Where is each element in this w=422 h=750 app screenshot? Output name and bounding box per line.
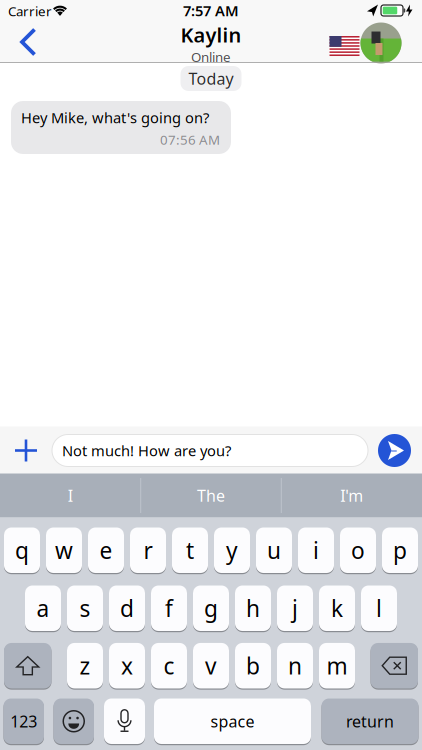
staticText: u: [267, 535, 281, 565]
button[interactable]: u: [256, 527, 292, 574]
staticText: h: [246, 593, 260, 623]
staticText: w: [55, 535, 73, 565]
staticText: m: [326, 651, 347, 681]
staticText: x: [121, 651, 133, 681]
staticText: p: [393, 535, 407, 565]
button[interactable]: I'm: [287, 485, 417, 506]
staticText: 7:57 AM: [183, 1, 239, 20]
button[interactable]: space: [154, 698, 311, 745]
button[interactable]: k: [319, 585, 355, 632]
staticText: t: [186, 535, 194, 565]
staticText: n: [288, 651, 302, 681]
staticText: g: [204, 593, 218, 623]
staticText: space: [210, 711, 254, 732]
staticText: d: [120, 593, 134, 623]
staticText: i: [313, 535, 319, 565]
button[interactable]: [4, 642, 51, 689]
button[interactable]: b: [235, 642, 271, 689]
button[interactable]: d: [109, 585, 145, 632]
staticText: 07:56 AM: [160, 131, 220, 148]
staticText: y: [226, 535, 238, 565]
staticText: c: [163, 651, 174, 681]
button[interactable]: [53, 698, 94, 745]
staticText: k: [331, 593, 343, 623]
button[interactable]: o: [340, 527, 376, 574]
staticText: Kaylin: [180, 21, 241, 48]
staticText: return: [346, 711, 394, 732]
staticText: z: [79, 651, 90, 681]
staticText: Online: [191, 48, 231, 66]
button[interactable]: I: [5, 485, 135, 506]
staticText: f: [165, 593, 173, 623]
staticText: 123: [10, 711, 37, 732]
button[interactable]: p: [382, 527, 418, 574]
staticText: q: [15, 535, 29, 565]
staticText: e: [99, 535, 112, 565]
button[interactable]: i: [298, 527, 334, 574]
button[interactable]: 123: [3, 698, 44, 745]
button[interactable]: w: [46, 527, 82, 574]
button[interactable]: s: [67, 585, 103, 632]
button[interactable]: l: [361, 585, 397, 632]
staticText: l: [376, 593, 382, 623]
staticText: j: [292, 593, 298, 623]
button[interactable]: t: [172, 527, 208, 574]
staticText: I: [68, 485, 73, 506]
staticText: Today: [188, 68, 233, 89]
button[interactable]: h: [235, 585, 271, 632]
button[interactable]: f: [151, 585, 187, 632]
button[interactable]: g: [193, 585, 229, 632]
staticText: v: [205, 651, 217, 681]
staticText: The: [197, 485, 225, 506]
staticText: a: [36, 593, 49, 623]
button[interactable]: r: [130, 527, 166, 574]
staticText: r: [143, 535, 152, 565]
button[interactable]: e: [88, 527, 124, 574]
button[interactable]: z: [67, 642, 103, 689]
button[interactable]: x: [109, 642, 145, 689]
button[interactable]: q: [4, 527, 40, 574]
button[interactable]: n: [277, 642, 313, 689]
button[interactable]: [360, 22, 401, 63]
button[interactable]: The: [146, 485, 276, 506]
button[interactable]: [14, 438, 38, 462]
staticText: I'm: [340, 485, 363, 506]
staticText: Not much! How are you?: [62, 441, 231, 460]
button[interactable]: y: [214, 527, 250, 574]
button[interactable]: v: [193, 642, 229, 689]
staticText: Carrier: [8, 2, 52, 20]
button[interactable]: [22, 29, 36, 55]
button[interactable]: a: [25, 585, 61, 632]
staticText: Hey Mike, what's going on?: [21, 108, 209, 127]
button[interactable]: [378, 434, 411, 467]
staticText: s: [79, 593, 90, 623]
staticText: b: [246, 651, 260, 681]
button[interactable]: return: [321, 698, 418, 745]
button[interactable]: [370, 642, 418, 689]
button[interactable]: j: [277, 585, 313, 632]
button[interactable]: c: [151, 642, 187, 689]
button[interactable]: [329, 36, 359, 56]
button[interactable]: m: [319, 642, 355, 689]
button[interactable]: [104, 698, 145, 745]
staticText: o: [351, 535, 365, 565]
